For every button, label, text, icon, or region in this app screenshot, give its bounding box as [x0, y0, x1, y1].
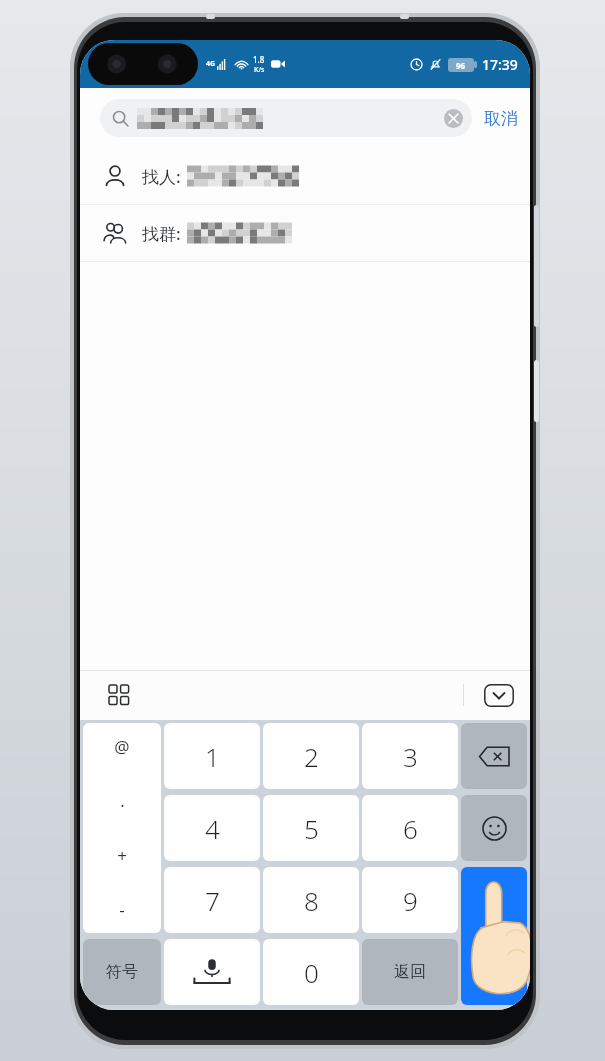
staticText: + [117, 844, 127, 867]
button[interactable]: 4 [164, 795, 260, 861]
staticText: K/s [254, 65, 265, 75]
staticText: 4G [206, 59, 216, 69]
staticText: 搜索 [478, 926, 510, 946]
button[interactable]: 搜索 [461, 867, 527, 1005]
staticText: 6 [403, 811, 418, 846]
staticText: 7 [205, 883, 220, 918]
staticText: 8 [304, 883, 319, 918]
button[interactable]: 7 [164, 867, 260, 933]
button[interactable]: Keyboard options [102, 678, 136, 712]
staticText: @ [114, 735, 130, 758]
button[interactable]: Clear [100, 99, 472, 137]
button[interactable]: 0 [263, 939, 359, 1005]
staticText: 符号 [106, 962, 138, 982]
button[interactable]: Space [164, 939, 260, 1005]
staticText: 3 [403, 739, 418, 774]
button[interactable]: 6 [362, 795, 458, 861]
staticText: 找人: [142, 165, 181, 188]
staticText: 取消 [484, 108, 518, 129]
button[interactable]: Clear [444, 109, 463, 128]
staticText: 9 [403, 883, 418, 918]
button[interactable]: 5 [263, 795, 359, 861]
staticText: 96 [456, 60, 466, 71]
staticText: 1 [205, 739, 220, 774]
button[interactable]: 2 [263, 723, 359, 789]
staticText: . [120, 789, 125, 812]
staticText: 4 [205, 811, 220, 846]
staticText: 找群: [142, 222, 181, 245]
staticText: 5 [304, 811, 319, 846]
button[interactable]: Hide keyboard [482, 682, 516, 708]
button[interactable]: 取消 [472, 98, 530, 138]
staticText: 2 [304, 739, 319, 774]
button[interactable]: 找群: [80, 205, 530, 261]
button[interactable]: 9 [362, 867, 458, 933]
staticText: 17:39 [482, 55, 518, 74]
button[interactable]: 符号 [83, 939, 161, 1005]
button[interactable]: 返回 [362, 939, 458, 1005]
button[interactable]: Emoji [461, 795, 527, 861]
staticText: 1.8 [253, 54, 265, 65]
button[interactable]: 3 [362, 723, 458, 789]
button[interactable]: Backspace [461, 723, 527, 789]
staticText: 返回 [394, 962, 426, 982]
button[interactable]: 1 [164, 723, 260, 789]
button[interactable]: 8 [263, 867, 359, 933]
staticText: - [119, 898, 125, 921]
staticText: 0 [304, 955, 319, 990]
button[interactable]: 找人: [80, 148, 530, 204]
button[interactable]: @ [83, 723, 161, 933]
